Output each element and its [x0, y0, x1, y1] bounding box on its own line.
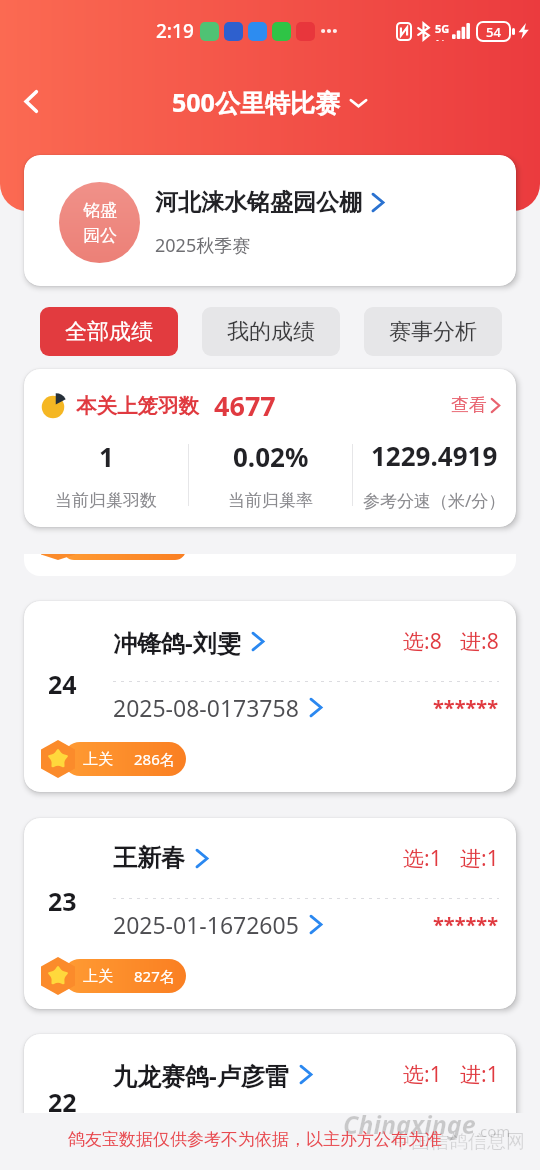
staticText: 进:1: [460, 844, 499, 873]
staticText: 当前归巢率: [228, 490, 313, 511]
staticText: 1: [99, 439, 114, 474]
button[interactable]: 22: [24, 1034, 516, 1170]
staticText: 5G: [435, 21, 450, 36]
staticText: 全部成绩: [65, 318, 153, 346]
staticText: 500公里特比赛: [172, 85, 340, 119]
staticText: 选:8: [403, 627, 442, 656]
staticText: 王新春: [113, 843, 185, 873]
staticText: 选:1: [403, 1060, 442, 1089]
staticText: 22: [48, 1085, 77, 1119]
button[interactable]: 24: [24, 601, 516, 792]
staticText: 286名: [134, 749, 175, 769]
staticText: 0.02%: [233, 439, 309, 474]
staticText: 铭盛: [83, 200, 117, 221]
staticText: ******: [433, 911, 499, 938]
staticText: 24: [48, 667, 77, 701]
button[interactable]: 23: [24, 818, 516, 1009]
staticText: 54: [486, 23, 501, 41]
staticText: 2025秋季赛: [155, 233, 251, 258]
staticText: 4677: [214, 387, 276, 424]
staticText: 进:8: [460, 627, 499, 656]
staticText: 2:19: [156, 18, 194, 44]
staticText: 当前归巢羽数: [55, 490, 157, 511]
staticText: 上关: [83, 967, 113, 986]
staticText: 冲锋鸽-刘雯: [113, 626, 241, 656]
button[interactable]: 查看: [451, 394, 500, 417]
staticText: ******: [433, 1127, 499, 1154]
staticText: 2025-01-1672605: [113, 909, 299, 939]
button[interactable]: 铭盛: [24, 155, 516, 286]
button[interactable]: 500公里特比赛: [172, 85, 368, 119]
staticText: 2025-03-1234567: [113, 1125, 299, 1155]
staticText: 上关: [83, 750, 113, 769]
button[interactable]: 我的成绩: [202, 307, 340, 356]
staticText: 参考分速（米/分）: [363, 489, 506, 512]
button[interactable]: Back: [8, 79, 54, 124]
button[interactable]: 赛事分析: [364, 307, 502, 356]
staticText: 赛事分析: [389, 318, 477, 346]
staticText: 2025-08-0173758: [113, 692, 299, 722]
staticText: 河北涞水铭盛园公棚: [155, 188, 362, 217]
staticText: 选:1: [403, 844, 442, 873]
staticText: 827名: [134, 966, 175, 986]
button[interactable]: 全部成绩: [40, 307, 178, 356]
staticText: 本关上笼羽数: [76, 393, 199, 419]
staticText: 我的成绩: [227, 318, 315, 346]
staticText: 1↓: [435, 37, 447, 41]
staticText: 1229.4919: [371, 438, 498, 473]
staticText: 查看: [451, 394, 487, 417]
staticText: 中国信鸽信息网: [392, 1130, 525, 1154]
staticText: 鸽友宝数据仅供参考不为依据，以主办方公布为准: [68, 1129, 442, 1150]
staticText: Chinaxinge: [343, 1107, 476, 1141]
staticText: ******: [433, 694, 499, 721]
staticText: .com: [476, 1121, 511, 1141]
staticText: 九龙赛鸽-卢彦雷: [113, 1059, 289, 1089]
staticText: 23: [48, 884, 77, 918]
staticText: 进:1: [460, 1060, 499, 1089]
staticText: 园公: [83, 225, 117, 246]
